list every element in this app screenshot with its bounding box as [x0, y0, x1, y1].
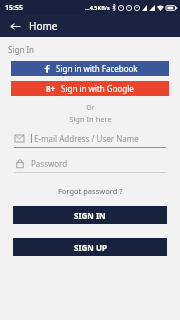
button[interactable]: Forgot password ?: [52, 183, 129, 199]
staticText: 8+: [46, 83, 56, 94]
staticText: Sign in with Facebook: [56, 63, 138, 74]
staticText: E-mail Address / User Name: [34, 133, 139, 144]
staticText: Home: [29, 19, 58, 33]
button[interactable]: Sign in with Facebook: [11, 61, 169, 76]
staticText: 15:55: [5, 3, 23, 13]
button[interactable]: Back: [7, 18, 23, 34]
staticText: Sign in with Google: [61, 83, 134, 94]
button[interactable]: 8+: [11, 81, 169, 96]
staticText: ...4.5KB/s: [85, 4, 110, 11]
staticText: SIGN UP: [74, 242, 107, 253]
staticText: Sign In: [8, 44, 35, 55]
staticText: SIGN IN: [74, 210, 106, 221]
button[interactable]: SIGN UP: [13, 238, 167, 256]
staticText: Sign In here: [69, 114, 112, 124]
staticText: Password: [31, 158, 68, 169]
staticText: Or: [86, 103, 95, 113]
button[interactable]: SIGN IN: [13, 206, 167, 224]
